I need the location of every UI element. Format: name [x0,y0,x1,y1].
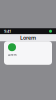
staticText: Lorem [8,53,16,57]
staticText: 9:41 [4,29,11,34]
staticText: Lorem [20,34,36,41]
